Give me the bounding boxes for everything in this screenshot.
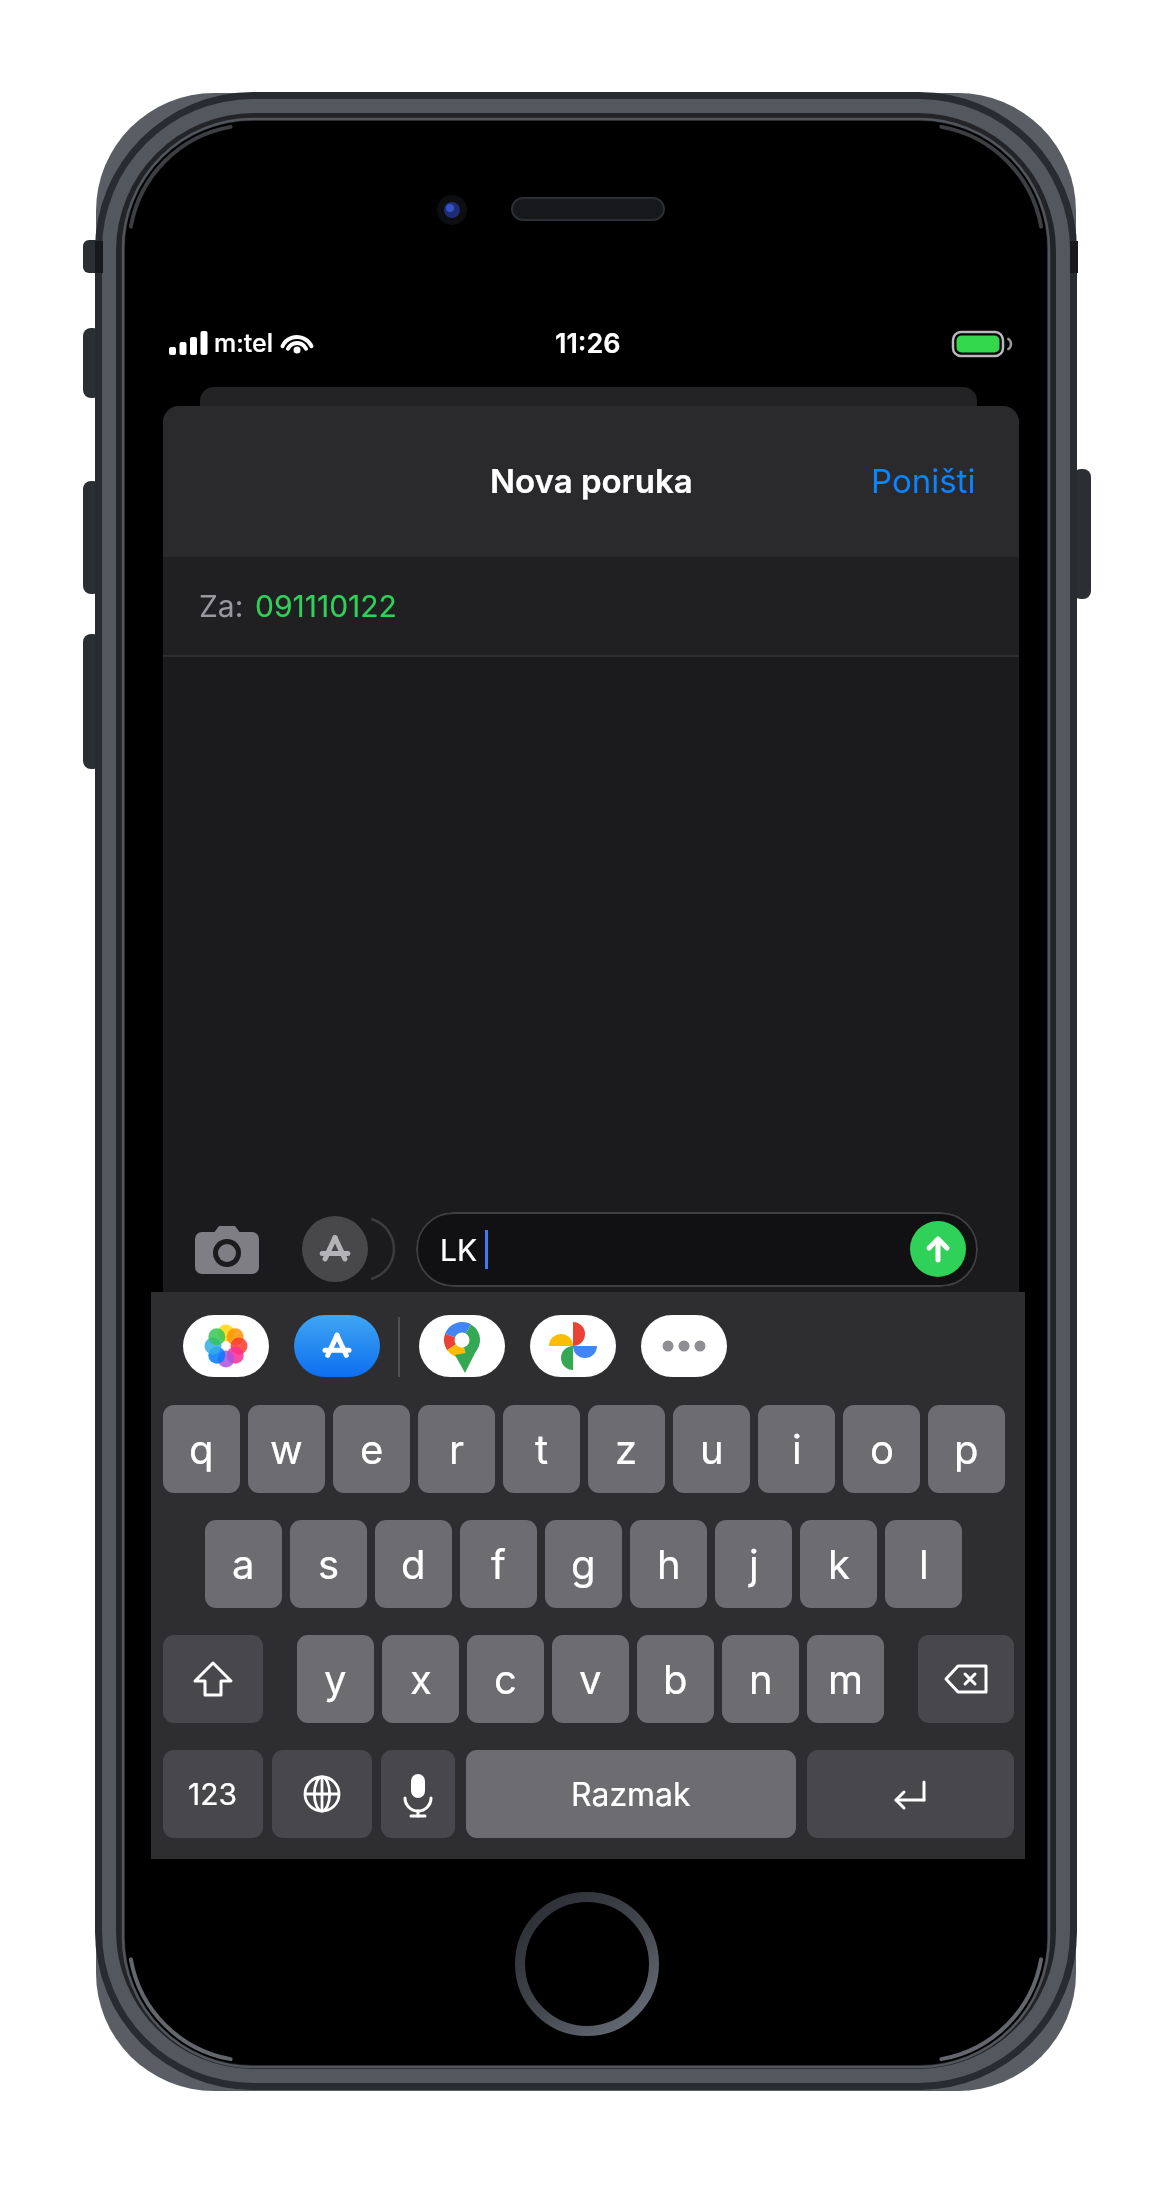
staticText: w bbox=[270, 1425, 303, 1473]
button[interactable]: n bbox=[722, 1635, 799, 1723]
staticText: m:tel bbox=[214, 328, 274, 356]
button[interactable]: Poništi bbox=[848, 451, 998, 511]
staticText: j bbox=[749, 1540, 759, 1588]
button[interactable]: v bbox=[552, 1635, 629, 1723]
staticText: n bbox=[749, 1655, 773, 1703]
button[interactable]: m bbox=[807, 1635, 884, 1723]
button[interactable]: k bbox=[800, 1520, 877, 1608]
button[interactable]: Razmak bbox=[466, 1750, 796, 1838]
button[interactable]: i bbox=[758, 1405, 835, 1493]
staticText: y bbox=[324, 1655, 347, 1703]
button[interactable]: Za: bbox=[163, 557, 1019, 655]
button[interactable] bbox=[641, 1315, 727, 1377]
button[interactable]: a bbox=[205, 1520, 282, 1608]
button[interactable]: t bbox=[503, 1405, 580, 1493]
button[interactable]: y bbox=[297, 1635, 374, 1723]
button[interactable]: c bbox=[467, 1635, 544, 1723]
staticText: 11:26 bbox=[555, 327, 621, 357]
button[interactable]: z bbox=[588, 1405, 665, 1493]
staticText: LK bbox=[440, 1232, 478, 1268]
staticText: l bbox=[919, 1540, 929, 1588]
button[interactable] bbox=[381, 1750, 455, 1838]
staticText: Nova poruka bbox=[490, 461, 693, 501]
button[interactable]: o bbox=[843, 1405, 920, 1493]
button[interactable] bbox=[910, 1221, 966, 1277]
staticText: 123 bbox=[188, 1776, 238, 1812]
staticText: 091110122 bbox=[255, 588, 397, 624]
staticText: f bbox=[491, 1540, 506, 1588]
button[interactable]: x bbox=[382, 1635, 459, 1723]
button[interactable] bbox=[193, 1222, 261, 1276]
staticText: z bbox=[615, 1425, 638, 1473]
staticText: x bbox=[410, 1655, 432, 1703]
button[interactable]: s bbox=[290, 1520, 367, 1608]
button[interactable]: w bbox=[248, 1405, 325, 1493]
staticText: g bbox=[571, 1540, 596, 1588]
button[interactable]: r bbox=[418, 1405, 495, 1493]
button[interactable]: e bbox=[333, 1405, 410, 1493]
staticText: Poništi bbox=[871, 461, 976, 501]
staticText: u bbox=[700, 1425, 724, 1473]
button[interactable] bbox=[294, 1315, 380, 1377]
button[interactable]: h bbox=[630, 1520, 707, 1608]
button[interactable] bbox=[807, 1750, 1014, 1838]
staticText: Razmak bbox=[571, 1775, 691, 1814]
staticText: v bbox=[579, 1655, 602, 1703]
button[interactable] bbox=[272, 1750, 372, 1838]
staticText: t bbox=[535, 1425, 549, 1473]
staticText: b bbox=[663, 1655, 688, 1703]
button[interactable]: 123 bbox=[163, 1750, 263, 1838]
staticText: h bbox=[657, 1540, 681, 1588]
staticText: q bbox=[189, 1425, 214, 1473]
button[interactable] bbox=[183, 1315, 269, 1377]
staticText: e bbox=[360, 1425, 384, 1473]
button[interactable] bbox=[530, 1315, 616, 1377]
button[interactable] bbox=[163, 1635, 263, 1723]
staticText: Za: bbox=[199, 588, 244, 624]
staticText: k bbox=[828, 1540, 850, 1588]
button[interactable]: d bbox=[375, 1520, 452, 1608]
button[interactable] bbox=[419, 1315, 505, 1377]
staticText: o bbox=[870, 1425, 894, 1473]
button[interactable]: f bbox=[460, 1520, 537, 1608]
staticText: i bbox=[792, 1425, 802, 1473]
button[interactable]: g bbox=[545, 1520, 622, 1608]
staticText: d bbox=[401, 1540, 426, 1588]
button[interactable] bbox=[302, 1216, 368, 1282]
staticText: p bbox=[954, 1425, 979, 1473]
button[interactable]: j bbox=[715, 1520, 792, 1608]
button[interactable]: q bbox=[163, 1405, 240, 1493]
button[interactable]: b bbox=[637, 1635, 714, 1723]
staticText: s bbox=[318, 1540, 340, 1588]
staticText: a bbox=[232, 1540, 255, 1588]
button[interactable]: u bbox=[673, 1405, 750, 1493]
button[interactable] bbox=[918, 1635, 1014, 1723]
staticText: m bbox=[828, 1655, 864, 1703]
staticText: r bbox=[449, 1425, 465, 1473]
button[interactable]: LK bbox=[416, 1212, 978, 1287]
staticText: c bbox=[494, 1655, 517, 1703]
button[interactable]: p bbox=[928, 1405, 1005, 1493]
button[interactable]: l bbox=[885, 1520, 962, 1608]
